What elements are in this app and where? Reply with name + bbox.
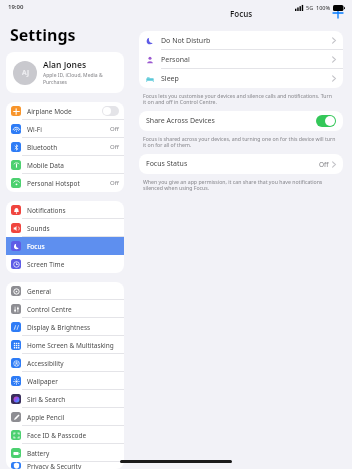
button[interactable]: Wi-Fi <box>6 120 124 138</box>
staticText: Off <box>110 179 119 187</box>
button[interactable]: Airplane Mode <box>6 102 124 120</box>
button[interactable]: Bluetooth <box>6 138 124 156</box>
button[interactable]: Sleep <box>139 69 343 88</box>
button[interactable]: Mobile Data <box>6 156 124 174</box>
staticText: Focus <box>230 8 253 19</box>
staticText: Sounds <box>27 224 50 233</box>
button[interactable]: Face ID & Passcode <box>6 426 124 444</box>
staticText: Notifications <box>27 206 66 215</box>
button[interactable]: Apple Pencil <box>6 408 124 426</box>
button[interactable]: Do Not Disturb <box>139 31 343 50</box>
staticText: Wi-Fi <box>27 125 42 134</box>
staticText: Personal <box>161 55 190 65</box>
button[interactable]: Add Focus <box>329 4 347 22</box>
button[interactable]: AJ <box>6 52 124 93</box>
button[interactable]: Control Centre <box>6 300 124 318</box>
staticText: Focus lets you customise your devices an… <box>143 92 336 106</box>
staticText: Face ID & Passcode <box>27 431 87 440</box>
staticText: Display & Brightness <box>27 323 91 332</box>
button[interactable]: Siri & Search <box>6 390 124 408</box>
button[interactable]: Toggle <box>316 115 336 127</box>
staticText: Wallpaper <box>27 377 58 386</box>
staticText: Apple Pencil <box>27 413 65 422</box>
staticText: Focus is shared across your devices, and… <box>143 135 336 149</box>
button[interactable]: Privacy & Security <box>6 462 124 469</box>
button[interactable]: Accessibility <box>6 354 124 372</box>
staticText: Share Across Devices <box>146 116 215 126</box>
staticText: When you give an app permission, it can … <box>143 178 336 192</box>
staticText: Off <box>319 160 329 169</box>
staticText: 5G <box>306 4 314 11</box>
staticText: Battery <box>27 449 50 458</box>
button[interactable]: General <box>6 282 124 300</box>
button[interactable]: Toggle <box>102 106 119 116</box>
button[interactable]: Battery <box>6 444 124 462</box>
button[interactable]: Wallpaper <box>6 372 124 390</box>
button[interactable]: Focus Status <box>139 154 343 174</box>
button[interactable]: Share Across Devices <box>139 111 343 131</box>
staticText: Sleep <box>161 74 179 84</box>
staticText: Off <box>110 143 119 151</box>
staticText: Airplane Mode <box>27 107 72 116</box>
staticText: 19:00 <box>8 3 24 11</box>
button[interactable]: Home Screen & Multitasking <box>6 336 124 354</box>
staticText: Focus Status <box>146 159 188 169</box>
staticText: Screen Time <box>27 260 65 269</box>
button[interactable]: Personal Hotspot <box>6 174 124 192</box>
staticText: AJ <box>22 68 29 78</box>
button[interactable]: Display & Brightness <box>6 318 124 336</box>
staticText: Off <box>110 125 119 133</box>
staticText: Privacy & Security <box>27 462 82 469</box>
staticText: Control Centre <box>27 305 72 314</box>
staticText: Mobile Data <box>27 161 64 170</box>
staticText: Alan Jones <box>43 59 87 71</box>
staticText: General <box>27 287 51 296</box>
staticText: Home Screen & Multitasking <box>27 341 114 350</box>
staticText: 100% <box>316 4 331 11</box>
staticText: Accessibility <box>27 359 64 368</box>
staticText: Settings <box>10 24 76 46</box>
staticText: Personal Hotspot <box>27 179 80 188</box>
staticText: Siri & Search <box>27 395 66 404</box>
staticText: Focus <box>27 242 45 251</box>
staticText: Bluetooth <box>27 143 58 152</box>
staticText: Apple ID, iCloud, Media & Purchases <box>43 72 117 86</box>
staticText: Do Not Disturb <box>161 36 211 46</box>
button[interactable]: Personal <box>139 50 343 69</box>
button[interactable]: Focus <box>6 237 124 255</box>
button[interactable]: Notifications <box>6 201 124 219</box>
button[interactable]: Screen Time <box>6 255 124 273</box>
button[interactable]: Sounds <box>6 219 124 237</box>
